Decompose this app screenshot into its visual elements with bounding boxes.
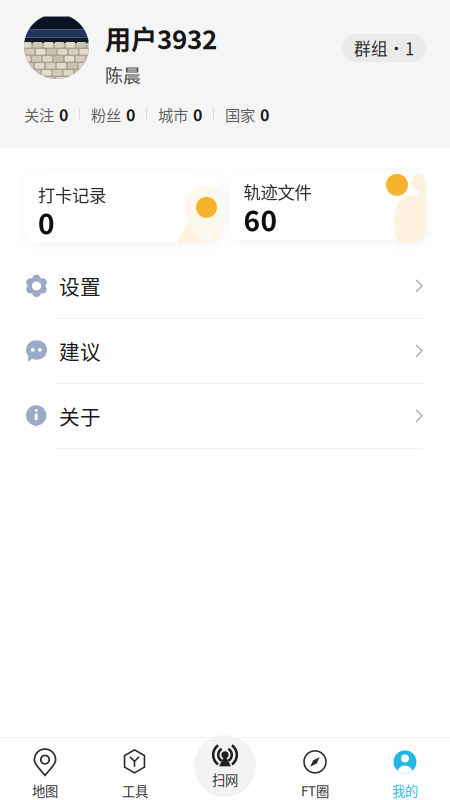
staticText: 关于 xyxy=(59,401,101,431)
button[interactable]: 建议 xyxy=(0,319,450,384)
button[interactable]: 群组·1 xyxy=(342,14,426,62)
button[interactable]: 工具 xyxy=(90,738,180,800)
staticText: 用户3932 xyxy=(105,19,217,57)
staticText: 陈晨 xyxy=(105,62,141,88)
staticText: 扫网 xyxy=(212,770,238,789)
staticText: 城市 xyxy=(158,103,188,125)
staticText: 0 xyxy=(59,103,68,126)
staticText: 地图 xyxy=(32,781,58,800)
staticText: 国家 xyxy=(225,103,255,125)
staticText: 0 xyxy=(126,103,135,126)
staticText: 群组·1 xyxy=(354,36,414,60)
button[interactable]: 我的 xyxy=(360,738,450,800)
staticText: 打卡记录 xyxy=(38,182,106,207)
staticText: 我的 xyxy=(392,781,418,800)
staticText: FT圈 xyxy=(301,781,329,800)
button[interactable]: 地图 xyxy=(0,738,90,800)
staticText: 轨迹文件 xyxy=(243,179,311,204)
staticText: 0 xyxy=(193,103,202,126)
staticText: 设置 xyxy=(59,271,101,301)
button[interactable]: 关于 xyxy=(0,384,450,449)
staticText: 0 xyxy=(38,202,55,242)
staticText: 0 xyxy=(260,103,269,126)
staticText: 建议 xyxy=(59,336,101,366)
button[interactable]: FT圈 xyxy=(270,738,360,800)
button[interactable]: 设置 xyxy=(0,254,450,319)
staticText: 粉丝 xyxy=(91,103,121,125)
staticText: 工具 xyxy=(122,781,148,800)
button[interactable]: 打卡记录 xyxy=(24,173,220,243)
button[interactable]: 扫网 xyxy=(194,735,256,797)
button[interactable]: 轨迹文件 xyxy=(229,173,426,243)
staticText: 关注 xyxy=(24,103,54,125)
staticText: 60 xyxy=(243,199,277,239)
